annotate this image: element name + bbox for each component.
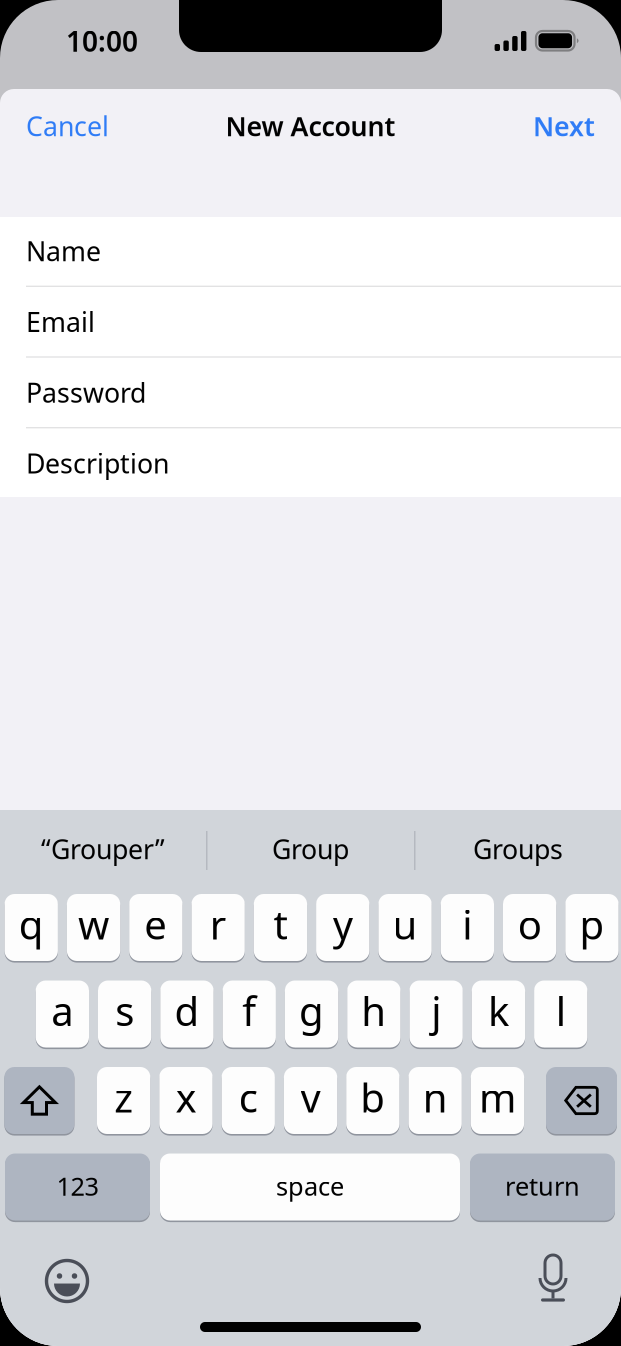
staticText: s (115, 984, 134, 1037)
button[interactable]: Dictation (533, 1254, 573, 1304)
staticText: Cancel (26, 108, 109, 144)
staticText: Email (26, 304, 95, 339)
staticText: p (579, 897, 604, 950)
staticText: u (392, 897, 417, 950)
staticText: Next (533, 108, 595, 144)
button[interactable]: Cancel (0, 95, 135, 157)
staticText: o (518, 897, 542, 950)
staticText: n (423, 1070, 448, 1123)
staticText: 10:00 (66, 22, 138, 60)
button[interactable]: 123 (5, 1153, 150, 1220)
button[interactable]: “Grouper” (0, 810, 206, 894)
staticText: 123 (56, 1169, 98, 1203)
button[interactable]: Name (0, 216, 621, 286)
staticText: return (505, 1169, 580, 1203)
button[interactable]: Email (0, 287, 621, 357)
staticText: d (174, 984, 199, 1037)
button[interactable]: Next (507, 95, 621, 157)
staticText: Password (26, 375, 146, 410)
button[interactable]: space (160, 1153, 460, 1220)
button[interactable]: Shift (4, 1067, 74, 1134)
staticText: a (51, 984, 73, 1037)
staticText: New Account (225, 108, 395, 144)
staticText: c (239, 1070, 258, 1123)
staticText: l (556, 984, 566, 1037)
staticText: x (175, 1070, 196, 1123)
button[interactable]: Groups (415, 810, 621, 894)
staticText: f (242, 984, 256, 1037)
button[interactable]: Delete (546, 1067, 617, 1134)
staticText: y (333, 897, 353, 950)
staticText: space (276, 1169, 344, 1203)
staticText: i (462, 897, 472, 950)
staticText: w (78, 897, 109, 950)
staticText: r (210, 897, 227, 950)
staticText: t (273, 897, 287, 950)
staticText: j (431, 984, 441, 1037)
staticText: k (488, 984, 509, 1037)
staticText: e (144, 897, 167, 950)
staticText: “Grouper” (41, 831, 165, 867)
staticText: g (299, 984, 324, 1037)
staticText: Name (26, 233, 101, 269)
staticText: Group (272, 831, 349, 867)
staticText: Description (26, 445, 169, 481)
staticText: Groups (473, 831, 563, 867)
button[interactable]: return (470, 1153, 615, 1220)
button[interactable]: Password (0, 357, 621, 427)
button[interactable]: Description (0, 428, 621, 498)
button[interactable]: Group (207, 810, 414, 894)
staticText: z (114, 1070, 133, 1123)
staticText: h (361, 984, 386, 1037)
staticText: q (19, 897, 44, 950)
staticText: b (360, 1070, 385, 1123)
staticText: v (300, 1070, 320, 1123)
staticText: m (479, 1070, 516, 1123)
button[interactable]: Emoji keyboard (44, 1258, 90, 1304)
